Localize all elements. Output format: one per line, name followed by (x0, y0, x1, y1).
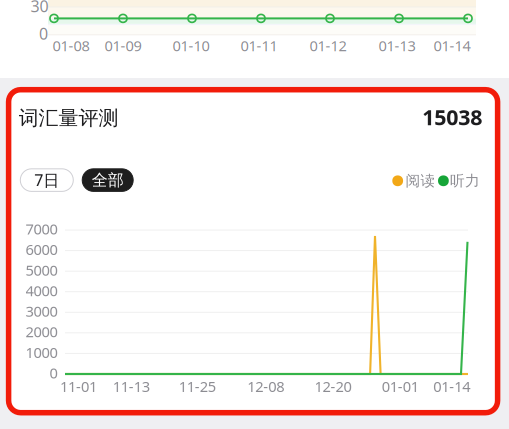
button[interactable]: 词汇量评测 (9, 90, 498, 413)
staticText: 30 (30, 0, 48, 17)
staticText: 1000 (26, 342, 58, 362)
staticText: 5000 (26, 260, 58, 280)
staticText: 3000 (26, 301, 58, 321)
staticText: 0 (50, 363, 58, 383)
staticText: 2000 (26, 322, 58, 341)
staticText: 0 (39, 23, 48, 44)
staticText: 6000 (26, 240, 58, 259)
staticText: 01-12 (309, 36, 346, 55)
button[interactable]: 7日 (20, 169, 73, 191)
staticText: 01-08 (52, 36, 89, 55)
staticText: 12-08 (247, 376, 284, 396)
staticText: 01-11 (240, 36, 277, 55)
staticText: 听力 (450, 172, 480, 190)
staticText: 01-14 (433, 36, 470, 55)
staticText: 12-20 (314, 376, 351, 396)
staticText: 7日 (34, 169, 59, 191)
staticText: 全部 (92, 170, 124, 190)
staticText: 01-01 (382, 376, 419, 396)
staticText: 01-10 (172, 36, 209, 55)
staticText: 11-25 (179, 376, 216, 396)
button[interactable]: 全部 (82, 169, 133, 191)
staticText: 01-14 (433, 376, 470, 396)
staticText: 阅读 (405, 172, 435, 190)
staticText: 01-13 (378, 36, 415, 55)
staticText: 7000 (26, 219, 58, 239)
staticText: 15038 (422, 103, 482, 131)
staticText: 11-13 (113, 376, 150, 396)
staticText: 01-09 (104, 36, 141, 55)
staticText: 4000 (26, 281, 58, 300)
staticText: 词汇量评测 (19, 106, 119, 130)
staticText: 11-01 (60, 376, 97, 396)
